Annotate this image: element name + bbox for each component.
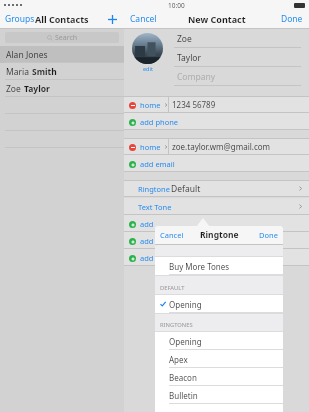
button[interactable]: Ringtone — [124, 180, 309, 197]
button[interactable]: add — [124, 249, 309, 266]
staticText: Taylor — [177, 52, 201, 64]
staticText: All Contacts — [35, 13, 89, 25]
staticText: DEFAULT — [160, 284, 185, 292]
staticText: Ringtone — [138, 184, 170, 194]
button[interactable]: Text Tone — [124, 198, 309, 215]
button[interactable]: Alan — [0, 46, 124, 63]
staticText: RINGTONES — [160, 321, 193, 329]
button[interactable]: Edit photo — [132, 33, 163, 64]
staticText: home — [140, 100, 161, 110]
staticText: Apex — [169, 354, 188, 365]
button[interactable]: add — [124, 215, 309, 232]
staticText: add email — [140, 159, 175, 169]
button[interactable]: Zoe — [174, 29, 301, 48]
staticText: add — [140, 219, 154, 229]
staticText: Opening — [169, 299, 202, 310]
button[interactable]: Zoe — [0, 80, 124, 97]
button[interactable]: home — [124, 138, 309, 155]
button[interactable]: Search — [5, 32, 119, 43]
button[interactable]: Add contact — [105, 12, 119, 26]
staticText: add — [140, 236, 154, 246]
staticText: zoe.taylor.wm@gmail.com — [172, 141, 271, 152]
staticText: Opening — [169, 336, 202, 347]
staticText: 10:00 — [168, 1, 185, 10]
staticText: home — [140, 142, 161, 152]
button[interactable]: Maria — [0, 63, 124, 80]
button[interactable]: Bulletin — [155, 386, 283, 404]
button[interactable]: add phone — [124, 113, 309, 130]
button[interactable]: Cancel — [160, 230, 184, 240]
staticText: Taylor — [24, 83, 50, 95]
staticText: Jones — [26, 49, 48, 61]
button[interactable]: add — [124, 232, 309, 249]
staticText: Smith — [32, 66, 57, 78]
staticText: Maria — [6, 66, 32, 78]
staticText: Ringtone — [200, 229, 239, 241]
button[interactable]: Buy More Tones — [155, 257, 283, 275]
button[interactable]: Beacon — [155, 368, 283, 386]
staticText: add phone — [140, 117, 179, 127]
staticText: 1234 56789 — [172, 99, 216, 110]
staticText: Beacon — [169, 372, 197, 383]
staticText: Text Tone — [138, 202, 172, 212]
staticText: add — [140, 253, 154, 263]
staticText: Zoe — [6, 83, 24, 95]
staticText: Search — [55, 33, 78, 43]
button[interactable]: Opening — [155, 332, 283, 350]
staticText: Alan — [6, 49, 26, 61]
button[interactable]: add email — [124, 155, 309, 172]
staticText: Default — [171, 183, 201, 195]
button[interactable]: Done — [281, 13, 303, 25]
button[interactable]: Cancel — [130, 13, 157, 25]
button[interactable]: Groups — [5, 13, 35, 25]
button[interactable]: Done — [259, 230, 278, 240]
button[interactable]: home — [124, 96, 309, 113]
staticText: New Contact — [188, 13, 246, 25]
staticText: Zoe — [177, 33, 192, 45]
staticText: Bulletin — [169, 390, 198, 401]
button[interactable]: Opening — [155, 295, 283, 313]
button[interactable]: Apex — [155, 350, 283, 368]
staticText: Company — [177, 71, 216, 83]
button[interactable]: Taylor — [174, 48, 301, 67]
staticText: Buy More Tones — [169, 261, 230, 272]
button[interactable]: Company — [174, 67, 301, 86]
staticText: edit — [143, 65, 153, 72]
